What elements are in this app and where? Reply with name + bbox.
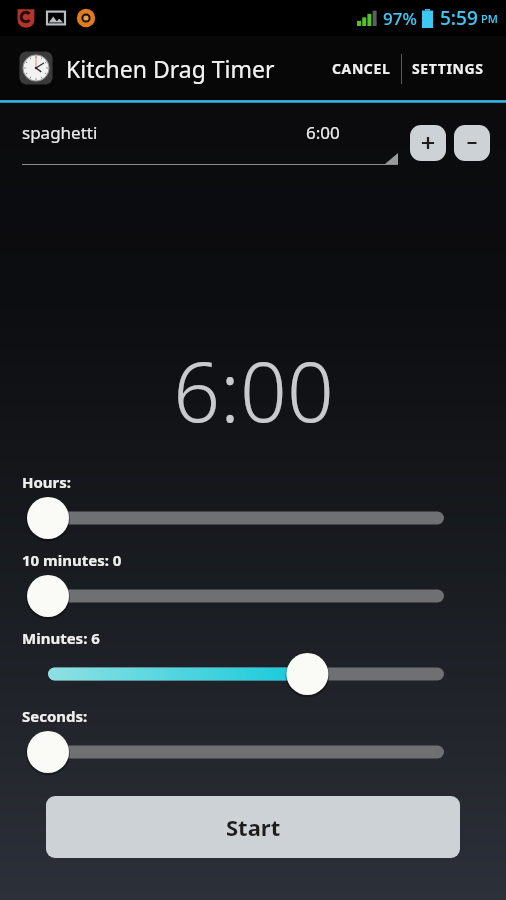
staticText: 5:59 — [440, 5, 478, 31]
button[interactable] — [22, 730, 460, 774]
staticText: Minutes: 6 — [22, 628, 100, 648]
staticText: Hours: — [22, 472, 72, 492]
staticText: CANCEL — [332, 59, 391, 78]
button[interactable]: SETTINGS — [402, 47, 494, 90]
staticText: SETTINGS — [412, 59, 484, 78]
staticText: Seconds: — [22, 706, 88, 726]
staticText: Start — [226, 812, 281, 842]
button[interactable]: CANCEL — [322, 47, 401, 90]
staticText: PM — [481, 11, 498, 26]
staticText: 6:00 — [173, 334, 334, 446]
button[interactable]: Increase time — [410, 125, 446, 161]
button[interactable]: spaghetti — [22, 121, 398, 165]
staticText: 6:00 — [306, 121, 340, 144]
staticText: spaghetti — [22, 121, 98, 144]
button[interactable]: Decrease time — [454, 125, 490, 161]
staticText: Kitchen Drag Timer — [66, 53, 275, 84]
staticText: 97% — [383, 7, 417, 30]
button[interactable]: Start — [46, 796, 460, 858]
button[interactable] — [22, 496, 460, 540]
staticText: 10 minutes: 0 — [22, 550, 122, 570]
button[interactable] — [22, 652, 460, 696]
button[interactable] — [22, 574, 460, 618]
